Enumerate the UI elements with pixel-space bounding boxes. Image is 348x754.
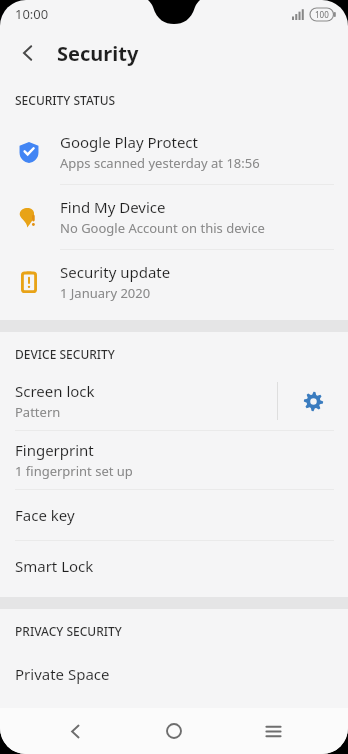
button[interactable]: Recents: [249, 708, 297, 754]
staticText: 1 fingerprint set up: [15, 462, 133, 480]
staticText: Security: [57, 40, 139, 67]
staticText: Google Play Protect: [60, 132, 198, 152]
staticText: 10:00: [15, 5, 49, 23]
staticText: Screen lock: [15, 381, 95, 401]
staticText: Pattern: [15, 403, 61, 421]
staticText: PRIVACY SECURITY: [15, 623, 122, 639]
button[interactable]: Back: [8, 33, 48, 73]
button[interactable]: Find My Device: [0, 185, 348, 249]
staticText: Smart Lock: [15, 556, 94, 576]
staticText: Private Space: [15, 664, 110, 684]
button[interactable]: Face key: [0, 490, 348, 540]
button[interactable]: Private Space: [0, 649, 348, 699]
button[interactable]: Fingerprint: [0, 431, 348, 489]
button[interactable]: Smart Lock: [0, 541, 348, 591]
button[interactable]: Back: [51, 708, 99, 754]
staticText: 100: [315, 9, 329, 20]
staticText: Security update: [60, 262, 171, 282]
staticText: Find My Device: [60, 197, 166, 217]
button[interactable]: Screen lock settings: [278, 372, 348, 430]
button[interactable]: Home: [150, 708, 198, 754]
staticText: No Google Account on this device: [60, 219, 265, 237]
staticText: Fingerprint: [15, 440, 94, 460]
staticText: DEVICE SECURITY: [15, 346, 115, 362]
staticText: 1 January 2020: [60, 284, 151, 302]
staticText: Face key: [15, 505, 75, 525]
staticText: SECURITY STATUS: [15, 92, 116, 108]
button[interactable]: Security update: [0, 250, 348, 314]
staticText: Apps scanned yesterday at 18:56: [60, 154, 260, 172]
button[interactable]: Google Play Protect: [0, 120, 348, 184]
button[interactable]: Screen lock: [0, 372, 277, 430]
